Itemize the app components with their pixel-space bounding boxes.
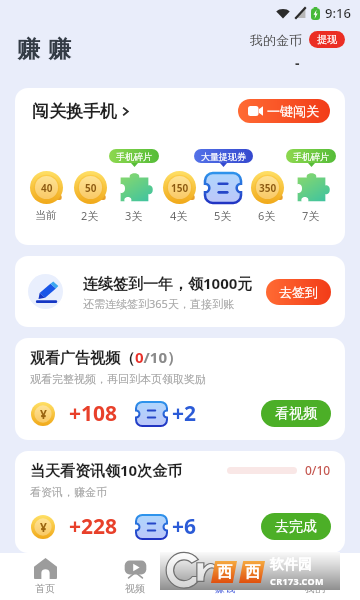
staticText: 50 [85,181,97,195]
staticText: 5关 [214,208,232,223]
staticText: 去签到 [279,284,318,300]
staticText: 赚赚 [13,35,75,64]
staticText: 提现 [317,33,337,46]
staticText: 我的 [305,582,325,595]
staticText: 西 [217,563,232,582]
button[interactable]: 赚钱 [180,553,270,600]
staticText: 0/10 [305,462,331,478]
staticText: 当天看资讯领10次金币 [30,460,183,480]
staticText: 2关 [81,208,99,223]
staticText: 当前 [35,208,57,222]
staticText: +2 [172,399,197,428]
staticText: +228 [69,512,118,541]
staticText: 大量提现券 [201,151,246,162]
staticText: 去完成 [275,518,317,536]
button[interactable]: 闯关换手机 [32,101,132,122]
button[interactable]: 首页 [0,553,90,600]
staticText: 9:16 [325,4,351,22]
staticText: 观看完整视频，再回到本页领取奖励 [30,372,206,386]
staticText: CR173.COM [270,575,325,587]
staticText: +6 [172,512,197,541]
staticText: 软件园 [270,556,312,574]
staticText: ¥ [40,406,47,422]
button[interactable]: 连续签到一年，领1000元 [15,256,345,327]
staticText: 我的金币 [250,32,302,48]
button[interactable]: 一键闯关 [238,99,330,123]
button[interactable]: 提现 [309,31,345,48]
button[interactable]: 看视频 [261,400,331,427]
staticText: 看视频 [275,405,317,423]
staticText: 350 [259,181,277,195]
button[interactable]: 我的 [270,553,360,600]
staticText: 首页 [35,582,55,595]
staticText: 150 [171,181,189,195]
staticText: 手机碎片 [116,151,152,162]
staticText: 3关 [125,208,143,223]
button[interactable]: 去签到 [266,279,331,305]
staticText: +108 [69,399,118,428]
staticText: 4关 [170,208,188,223]
staticText: 西 [245,563,260,582]
button[interactable]: 视频 [90,553,180,600]
staticText: 6关 [258,208,276,223]
staticText: 闯关换手机 [32,101,117,122]
staticText: 连续签到一年，领1000元 [83,273,253,293]
staticText: 视频 [125,582,145,595]
staticText: 赚钱 [215,582,235,595]
staticText: 还需连续签到365天，直接到账 [83,296,234,311]
staticText: 一键闯关 [267,103,319,119]
staticText: ¥ [40,519,47,535]
staticText: 手机碎片 [293,151,329,162]
staticText: 40 [41,181,53,195]
staticText: 7关 [302,208,320,223]
staticText: 观看广告视频（0/10） [30,347,182,367]
button[interactable]: 去完成 [261,513,331,540]
staticText: 看资讯，赚金币 [30,485,107,499]
staticText: - [295,53,300,72]
